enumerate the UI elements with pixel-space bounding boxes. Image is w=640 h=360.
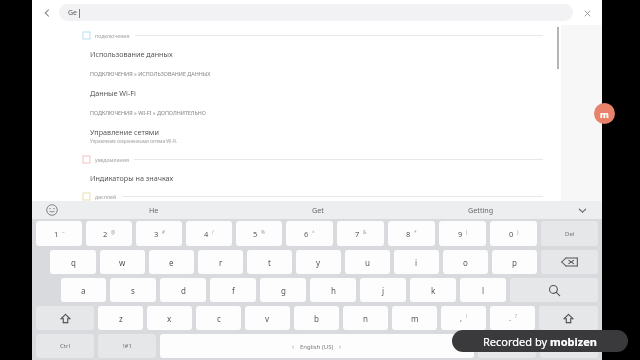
button[interactable]: z — [98, 306, 143, 330]
button[interactable]: m — [392, 306, 437, 330]
button[interactable]: 3 — [136, 221, 182, 246]
staticText: ~ — [62, 229, 65, 235]
button[interactable]: Emoji — [32, 201, 72, 219]
staticText: Данные Wi-Fi — [90, 88, 136, 98]
button[interactable] — [540, 334, 598, 358]
staticText: mobizen — [550, 334, 597, 349]
staticText: q — [71, 257, 76, 268]
staticText: , — [460, 313, 463, 323]
button[interactable]: Использование данных — [80, 44, 543, 64]
staticText: & — [363, 229, 367, 235]
button[interactable]: r — [198, 250, 243, 274]
button[interactable]: q — [50, 250, 96, 274]
staticText: % — [261, 229, 265, 235]
staticText: s — [131, 285, 135, 296]
button[interactable]: h — [310, 278, 356, 302]
staticText: n — [363, 313, 368, 324]
button[interactable]: 6 — [286, 221, 333, 246]
button[interactable]: He — [72, 201, 236, 219]
button[interactable]: 0 — [490, 221, 537, 246]
button[interactable]: . — [490, 306, 535, 330]
button[interactable]: Индикаторы на значках — [80, 168, 543, 188]
button[interactable]: 7 — [337, 221, 384, 246]
staticText: ПОДКЛЮЧЕНИЯ » WI-FI » ДОПОЛНИТЕЛЬНО — [90, 109, 206, 116]
staticText: . — [509, 313, 512, 323]
button[interactable]: t — [247, 250, 292, 274]
button[interactable]: v — [245, 306, 290, 330]
staticText: ) — [517, 229, 519, 235]
button[interactable]: ‹ — [160, 334, 474, 358]
staticText: уведомления — [95, 156, 129, 163]
staticText: # — [162, 229, 165, 235]
staticText: a — [81, 285, 86, 296]
button[interactable]: Get — [236, 201, 399, 219]
button[interactable]: g — [260, 278, 306, 302]
button[interactable]: 4 — [186, 221, 232, 246]
staticText: Использование данных — [90, 49, 173, 59]
staticText: ПОДКЛЮЧЕНИЯ » ИСПОЛЬЗОВАНИЕ ДАННЫХ — [90, 70, 211, 77]
button[interactable]: f — [210, 278, 256, 302]
staticText: › — [339, 342, 342, 351]
button[interactable]: ПОДКЛЮЧЕНИЯ » ИСПОЛЬЗОВАНИЕ ДАННЫХ — [80, 64, 543, 83]
button[interactable]: b — [294, 306, 339, 330]
staticText: c — [217, 313, 221, 324]
button[interactable]: Shift — [36, 306, 94, 330]
button[interactable]: . — [478, 334, 536, 358]
button[interactable]: Shift — [539, 306, 598, 330]
staticText: l — [482, 285, 485, 296]
button[interactable]: o — [443, 250, 488, 274]
staticText: r — [219, 257, 223, 268]
button[interactable]: l — [460, 278, 506, 302]
staticText: w — [119, 257, 126, 268]
button[interactable]: Данные Wi-Fi — [80, 83, 543, 103]
button[interactable]: !#1 — [98, 334, 156, 358]
button[interactable]: , — [441, 306, 486, 330]
button[interactable]: Ctrl — [36, 334, 94, 358]
button[interactable]: Ge — [59, 4, 573, 21]
button[interactable]: s — [110, 278, 156, 302]
button[interactable]: d — [160, 278, 206, 302]
staticText: 5 — [253, 229, 258, 239]
button[interactable]: y — [296, 250, 341, 274]
button[interactable]: Del — [541, 221, 598, 246]
button[interactable]: 5 — [236, 221, 282, 246]
button[interactable]: u — [345, 250, 390, 274]
button[interactable]: ПОДКЛЮЧЕНИЯ » WI-FI » ДОПОЛНИТЕЛЬНО — [80, 103, 543, 122]
staticText: 7 — [355, 229, 360, 239]
staticText: / — [212, 229, 214, 235]
button[interactable]: a — [61, 278, 106, 302]
staticText: t — [268, 257, 271, 268]
button[interactable]: p — [492, 250, 537, 274]
button[interactable]: Expand suggestions — [562, 201, 602, 219]
staticText: Управление сохраненными сетями Wi-Fi. — [90, 138, 178, 144]
staticText: 8 — [406, 229, 411, 239]
button[interactable]: j — [360, 278, 406, 302]
staticText: Del — [565, 230, 575, 238]
button[interactable]: x — [147, 306, 192, 330]
button[interactable]: Getting — [399, 201, 562, 219]
button[interactable]: 2 — [86, 221, 132, 246]
button[interactable]: 8 — [388, 221, 435, 246]
button[interactable]: e — [149, 250, 194, 274]
button[interactable]: 1 — [36, 221, 82, 246]
staticText: d — [181, 285, 186, 296]
button[interactable]: Backspace — [541, 250, 598, 274]
staticText: 9 — [458, 229, 463, 239]
staticText: Ctrl — [60, 342, 70, 350]
button[interactable]: i — [394, 250, 439, 274]
button[interactable]: Управление сетями — [80, 122, 543, 149]
button[interactable]: Clear search — [579, 5, 595, 21]
staticText: g — [281, 285, 286, 296]
staticText: English (US) — [300, 343, 334, 351]
staticText: !#1 — [123, 342, 132, 350]
button[interactable]: c — [196, 306, 241, 330]
button[interactable]: Search — [510, 278, 598, 302]
button[interactable]: 9 — [439, 221, 486, 246]
button[interactable]: w — [100, 250, 145, 274]
button[interactable]: k — [410, 278, 456, 302]
button[interactable]: n — [343, 306, 388, 330]
button[interactable]: Back — [39, 5, 55, 21]
staticText: x — [167, 313, 172, 324]
staticText: Индикаторы на значках — [90, 173, 174, 183]
staticText: @ — [111, 229, 116, 235]
